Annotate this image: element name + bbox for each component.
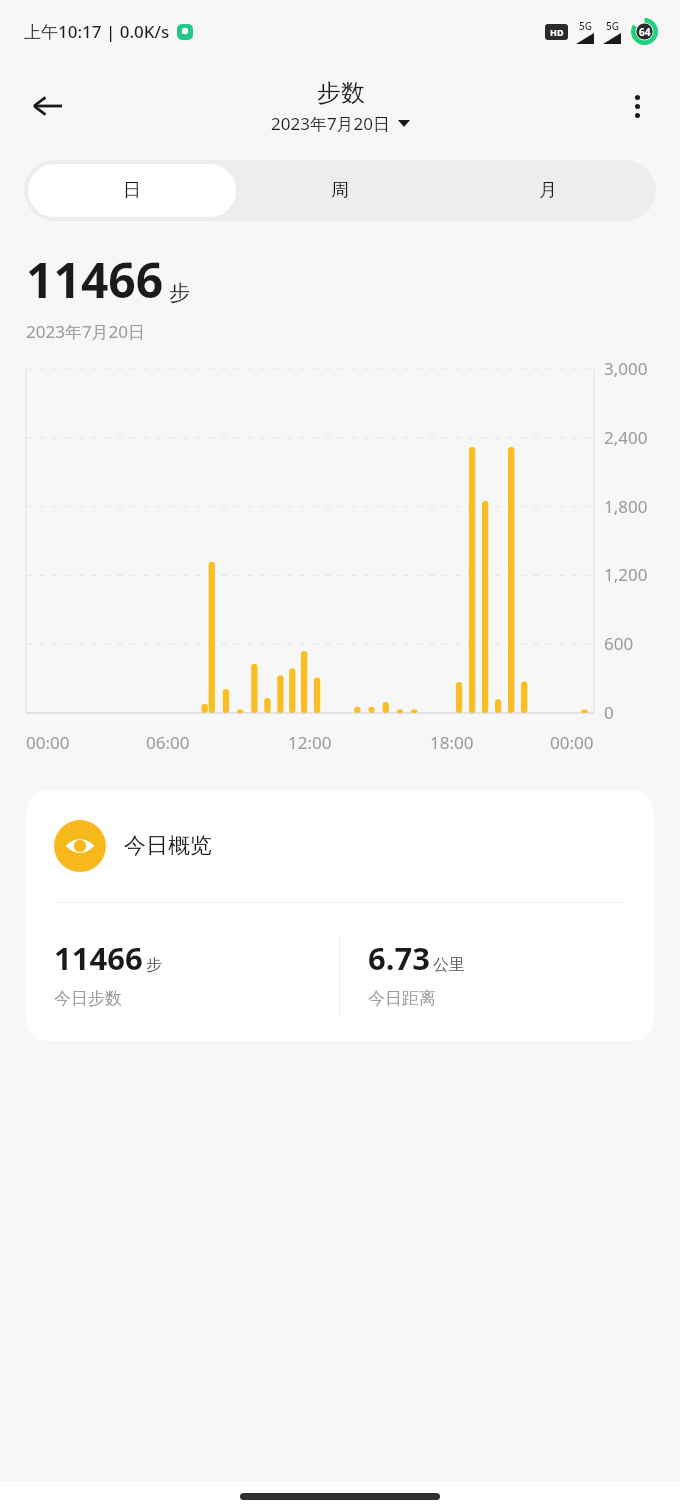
- staticText: 日: [123, 179, 141, 202]
- staticText: 2023年7月20日: [271, 112, 391, 135]
- staticText: 今日步数: [54, 988, 122, 1009]
- button[interactable]: More options: [612, 81, 662, 131]
- staticText: 06:00: [146, 731, 190, 754]
- staticText: 步: [169, 280, 190, 306]
- staticText: 3,000: [604, 357, 648, 380]
- staticText: 1,200: [604, 563, 648, 586]
- staticText: 月: [539, 179, 557, 202]
- staticText: 18:00: [430, 731, 474, 754]
- staticText: 11466: [26, 247, 164, 312]
- staticText: 2023年7月20日: [26, 320, 146, 343]
- staticText: 12:00: [288, 731, 332, 754]
- staticText: 今日距离: [368, 988, 436, 1009]
- staticText: 11466: [54, 937, 143, 979]
- button[interactable]: 步数: [271, 78, 410, 135]
- staticText: 00:00: [26, 731, 70, 754]
- button[interactable]: 日: [28, 164, 236, 217]
- button[interactable]: 今日概览: [26, 790, 654, 1041]
- staticText: 6.73: [368, 937, 430, 979]
- staticText: HD: [550, 26, 564, 38]
- staticText: 1,800: [604, 495, 648, 518]
- button[interactable]: Back: [20, 78, 76, 134]
- staticText: 2,400: [604, 426, 648, 449]
- button[interactable]: 月: [444, 164, 652, 217]
- staticText: 公里: [433, 955, 465, 975]
- staticText: 0: [604, 701, 614, 724]
- staticText: 步数: [317, 78, 365, 108]
- staticText: 64: [639, 25, 651, 39]
- staticText: 步: [146, 955, 162, 975]
- staticText: 600: [604, 632, 634, 655]
- staticText: 5G: [606, 19, 619, 33]
- staticText: 00:00: [550, 731, 594, 754]
- staticText: 5G: [579, 19, 592, 33]
- button[interactable]: 周: [236, 164, 444, 217]
- staticText: 今日概览: [124, 832, 212, 860]
- staticText: 上午10:17 | 0.0K/s: [24, 20, 170, 43]
- staticText: 周: [331, 179, 349, 202]
